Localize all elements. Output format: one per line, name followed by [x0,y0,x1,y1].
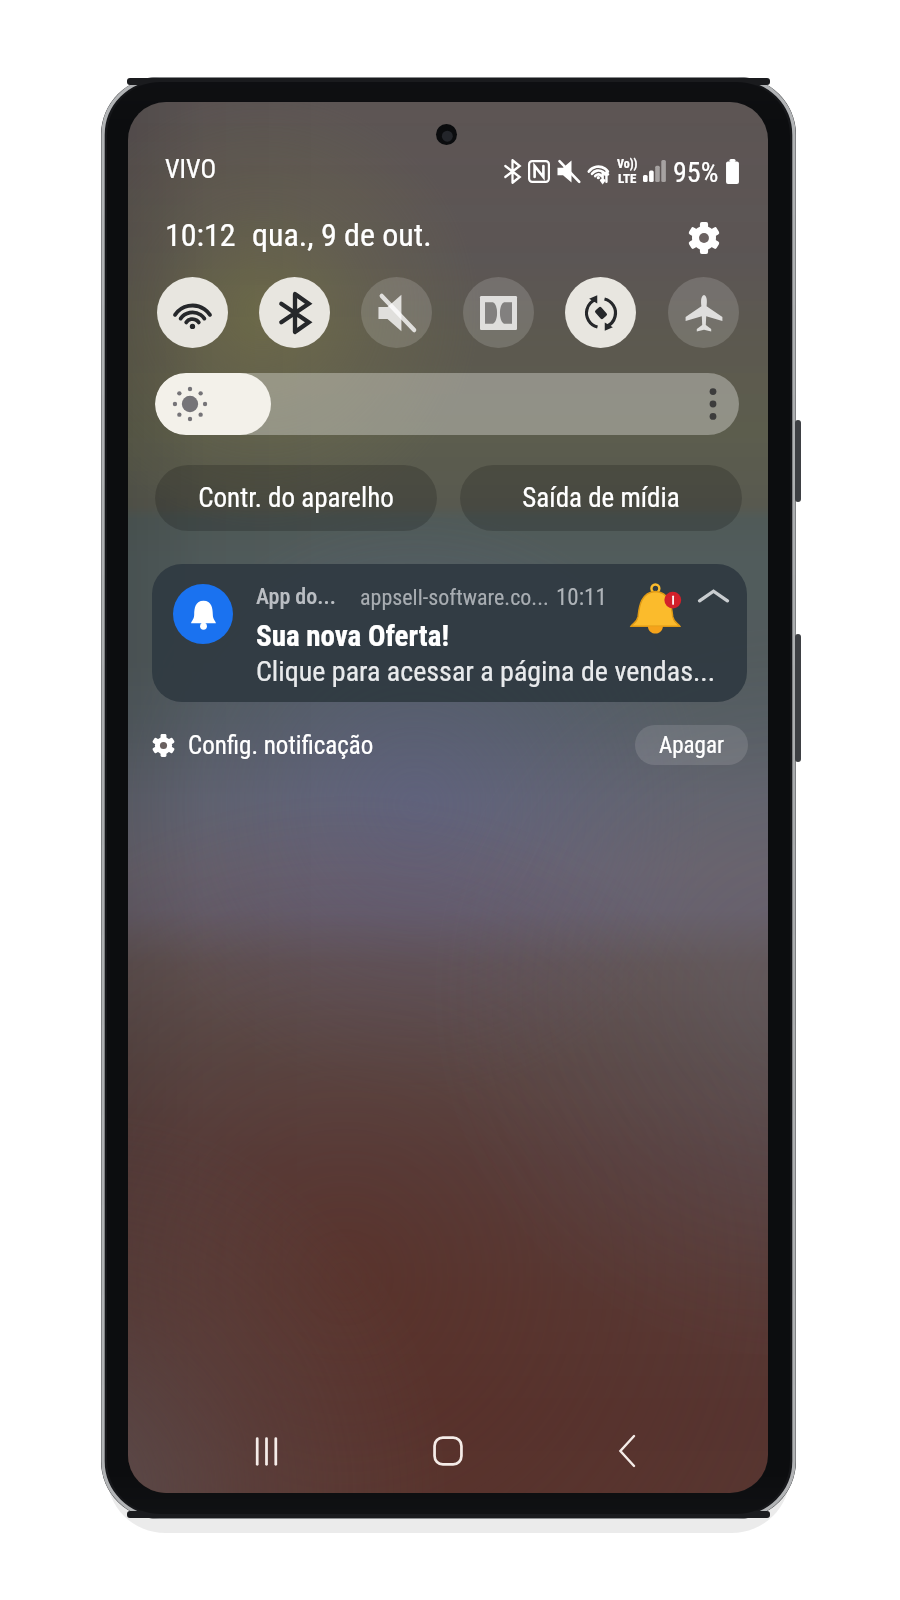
staticText: Saída de mídia [522,482,680,514]
staticText: Apagar [659,732,724,759]
button[interactable]: Contr. do aparelho [155,465,437,531]
button[interactable]: Config. notificação [152,727,374,763]
button[interactable]: Dolby Atmos [463,277,534,348]
button[interactable]: Apagar [635,725,748,765]
staticText: App do... [256,584,336,610]
staticText: LTE [618,171,637,185]
staticText: Sua nova Oferta! [256,619,449,653]
button[interactable]: Bluetooth [259,277,330,348]
button[interactable]: App do... [152,564,747,702]
button[interactable]: Saída de mídia [460,465,742,531]
staticText: appsell-software.co... [360,585,549,611]
button[interactable]: Auto rotate [565,277,636,348]
staticText: Config. notificação [188,731,374,760]
staticText: 10:11 [556,584,607,611]
button[interactable]: Mute [361,277,432,348]
staticText: Contr. do aparelho [198,482,394,514]
button[interactable]: Brightness [155,373,739,435]
button[interactable]: Recents [225,1411,307,1491]
button[interactable]: Back [586,1411,668,1491]
staticText: Clique para acessar a página de vendas..… [256,655,716,688]
staticText: 10:12 [165,216,236,254]
button[interactable]: Wi-Fi [157,277,228,348]
button[interactable]: Home [407,1411,489,1491]
button[interactable]: Settings [678,212,730,264]
button[interactable]: Collapse [690,573,736,619]
staticText: Vo)) [617,157,638,171]
button[interactable]: Airplane mode [668,277,739,348]
staticText: VIVO [165,154,217,184]
staticText: 95% [673,156,719,186]
staticText: qua., 9 de out. [252,216,432,254]
